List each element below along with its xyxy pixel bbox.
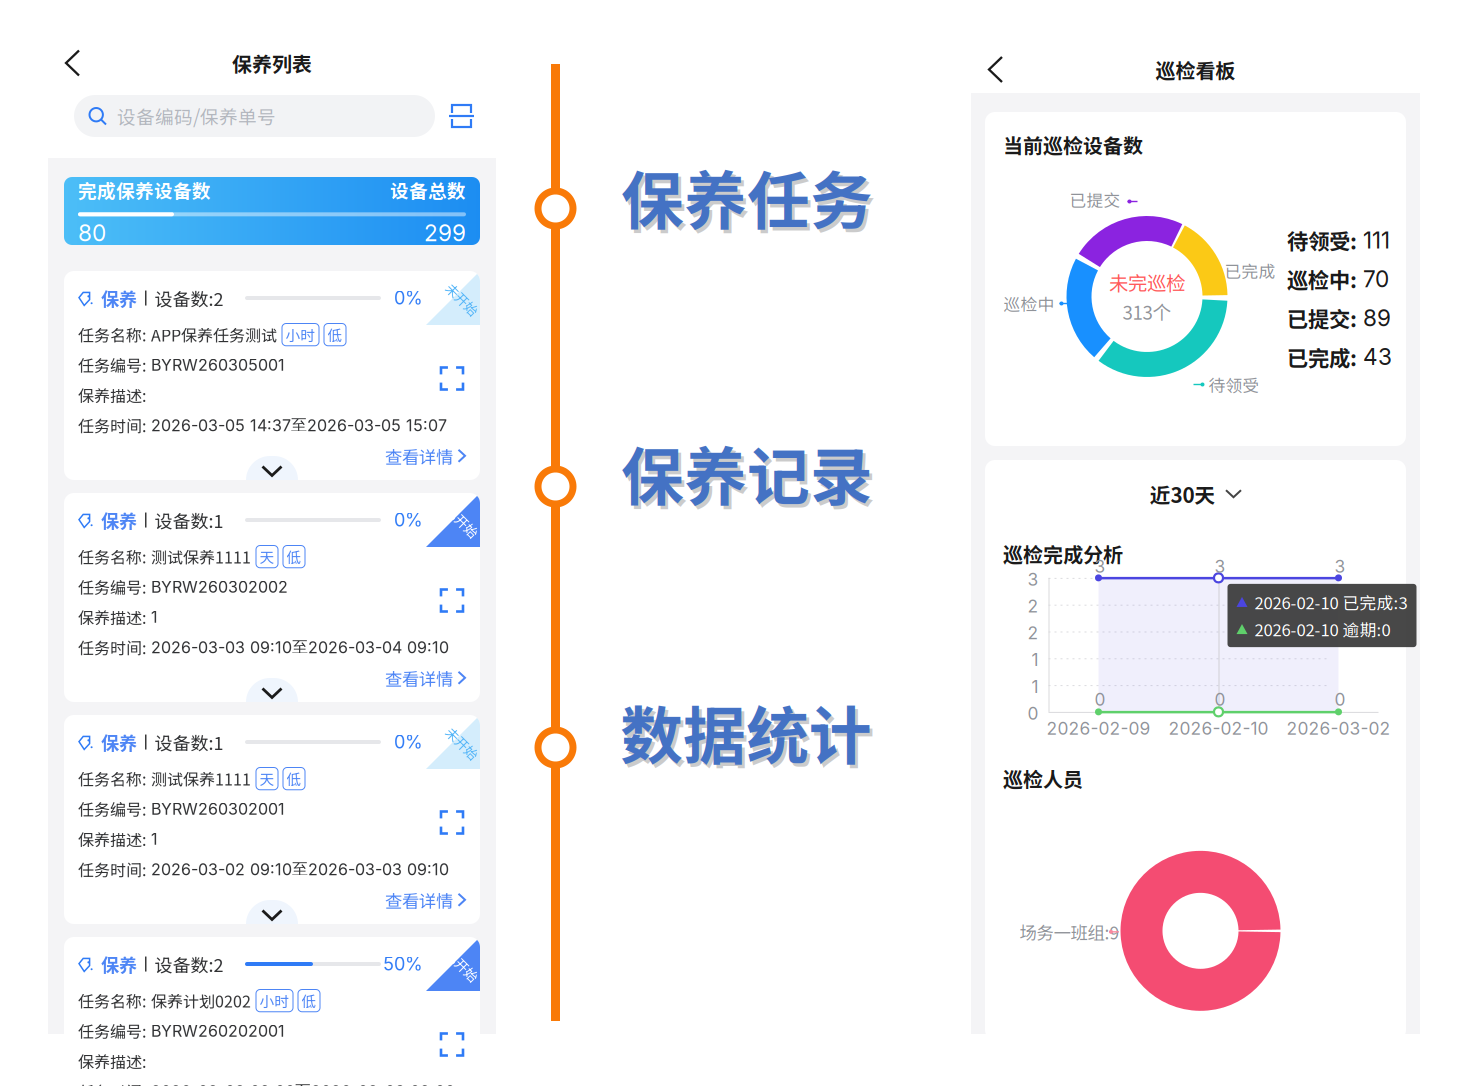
- staticText: 低: [301, 990, 316, 1011]
- staticText: 0%: [394, 509, 423, 531]
- button[interactable]: 展开: [246, 678, 298, 726]
- staticText: 完成保养设备数: [78, 176, 211, 203]
- staticText: 设备编码/保养单号: [117, 102, 276, 129]
- staticText: 查看详情: [385, 444, 453, 469]
- staticText: 已提交: [1069, 187, 1120, 211]
- staticText: BYRW260302002: [151, 577, 288, 596]
- staticText: BYRW260202001: [151, 1021, 285, 1040]
- staticText: 已提交:: [1287, 302, 1357, 333]
- staticText: 设备总数: [390, 176, 466, 203]
- staticText: 2026-02-10 已完成:3: [1254, 590, 1407, 614]
- staticText: 任务编号:: [78, 353, 146, 376]
- button[interactable]: 切换视图: [449, 102, 474, 130]
- staticText: 0: [1094, 689, 1105, 710]
- staticText: 保养记录: [621, 427, 873, 518]
- staticText: 设备数:1: [146, 729, 223, 755]
- staticText: 已完成: [1224, 258, 1275, 282]
- staticText: 2: [1027, 622, 1038, 643]
- staticText: 保养: [93, 285, 137, 311]
- button[interactable]: 查看详情: [385, 444, 466, 469]
- staticText: 测试保养1111: [151, 545, 251, 568]
- staticText: 保养描述:: [78, 1049, 146, 1073]
- staticText: 近30天: [1149, 479, 1215, 509]
- staticText: 保养描述:: [78, 605, 146, 629]
- staticText: 低: [286, 546, 301, 567]
- staticText: 查看详情: [385, 888, 453, 913]
- staticText: 保养: [93, 507, 137, 533]
- staticText: 查看详情: [385, 666, 453, 691]
- staticText: 设备数:1: [146, 507, 223, 533]
- staticText: 0: [1027, 703, 1038, 724]
- staticText: 2026-02-10 逾期:0: [1254, 617, 1390, 641]
- staticText: 2: [1027, 596, 1038, 617]
- staticText: 未完巡检: [1109, 268, 1185, 296]
- button[interactable]: 展开: [246, 456, 298, 504]
- staticText: 1: [1031, 649, 1038, 670]
- staticText: 1: [151, 829, 158, 849]
- staticText: 0%: [394, 287, 423, 309]
- staticText: 任务时间:: [78, 1080, 146, 1086]
- staticText: 3: [1027, 569, 1038, 590]
- staticText: 3: [1094, 556, 1105, 577]
- staticText: 任务编号:: [78, 797, 146, 820]
- staticText: APP保养任务测试: [151, 323, 277, 346]
- staticText: 2026-03-05 14:37至2026-03-05 15:07: [151, 415, 447, 435]
- staticText: 天: [259, 546, 274, 567]
- staticText: 80: [78, 219, 106, 247]
- staticText: BYRW260305001: [151, 355, 285, 374]
- staticText: 0: [1334, 689, 1345, 710]
- staticText: 2026-03-02: [1286, 718, 1390, 739]
- staticText: 1: [151, 607, 158, 627]
- staticText: 任务名称:: [78, 545, 146, 568]
- staticText: 保养计划0202: [151, 989, 251, 1012]
- staticText: 保养列表: [232, 48, 312, 77]
- button[interactable]: 展开: [246, 900, 298, 948]
- staticText: 43: [1363, 343, 1392, 370]
- staticText: 已开始: [443, 955, 482, 975]
- staticText: 当前巡检设备数: [1003, 130, 1143, 159]
- staticText: 巡检人员: [1003, 764, 1083, 793]
- staticText: 测试保养1111: [151, 767, 251, 790]
- staticText: 天: [259, 768, 274, 789]
- staticText: BYRW260302001: [151, 799, 285, 818]
- staticText: 1: [1031, 676, 1038, 697]
- staticText: 任务时间:: [78, 636, 146, 659]
- staticText: 70: [1363, 265, 1389, 293]
- button[interactable]: 返回: [989, 57, 1002, 82]
- staticText: 任务时间:: [78, 858, 146, 881]
- button[interactable]: 查看详情: [385, 666, 466, 691]
- staticText: 任务编号:: [78, 575, 146, 598]
- staticText: 保养描述:: [78, 383, 146, 407]
- staticText: 任务时间:: [78, 414, 146, 437]
- staticText: 313个: [1122, 298, 1171, 325]
- staticText: 2026-03-03 09:10至2026-03-04 09:10: [151, 637, 449, 657]
- staticText: 任务名称:: [78, 989, 146, 1012]
- staticText: 299: [424, 219, 466, 247]
- staticText: 保养任务: [624, 154, 876, 245]
- staticText: 巡检完成分析: [1003, 539, 1123, 568]
- staticText: 低: [286, 768, 301, 789]
- staticText: 设备数:2: [146, 285, 223, 311]
- staticText: 任务名称:: [78, 323, 146, 346]
- staticText: 待领受: [1208, 372, 1259, 396]
- staticText: 待领受:: [1287, 225, 1357, 256]
- staticText: 巡检看板: [1155, 55, 1235, 84]
- staticText: 巡检中: [1003, 291, 1054, 315]
- staticText: 2026-02-09: [1046, 718, 1150, 739]
- staticText: 111: [1363, 226, 1390, 254]
- staticText: 小时: [285, 324, 315, 345]
- staticText: 保养: [93, 729, 137, 755]
- staticText: 任务编号:: [78, 1019, 146, 1042]
- staticText: 0%: [394, 731, 423, 753]
- button[interactable]: 返回: [66, 50, 79, 75]
- staticText: 保养描述:: [78, 827, 146, 851]
- button[interactable]: 查看详情: [385, 888, 466, 913]
- button[interactable]: 近30天: [1149, 479, 1241, 509]
- staticText: 设备数:2: [146, 951, 223, 977]
- staticText: 巡检中:: [1287, 264, 1357, 294]
- staticText: 数据统计: [620, 686, 872, 777]
